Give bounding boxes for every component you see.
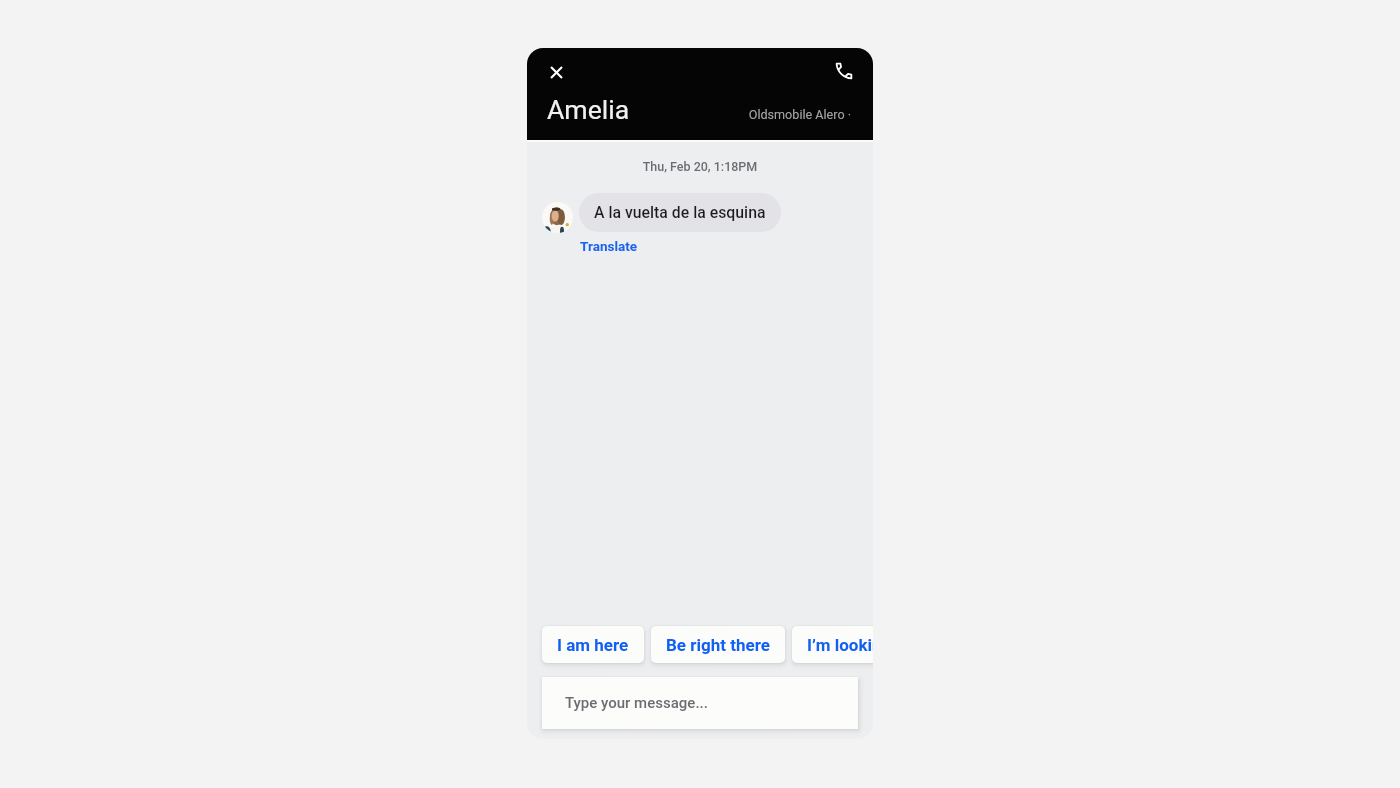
button[interactable]: Translate [577,236,641,256]
button[interactable]: I am here [542,626,644,663]
staticText: Translate [580,238,638,254]
other: Amelia profile photo [542,202,573,233]
button[interactable]: Be right there [651,626,785,663]
staticText: Amelia [547,94,630,125]
button[interactable]: Close [541,57,572,88]
button[interactable]: I’m looking for you [792,626,873,663]
staticText: Be right there [666,635,770,655]
staticText: Type your message... [565,694,708,712]
staticText: Thu, Feb 20, 1:18PM [527,159,873,174]
staticText: Oldsmobile Alero · [527,107,851,122]
button[interactable]: Type your message... [542,677,858,729]
button[interactable]: A la vuelta de la esquina [579,193,781,232]
staticText: I am here [557,635,629,655]
staticText: I’m looking for you [807,635,873,655]
button[interactable]: Call [828,55,859,86]
staticText: A la vuelta de la esquina [594,203,766,222]
